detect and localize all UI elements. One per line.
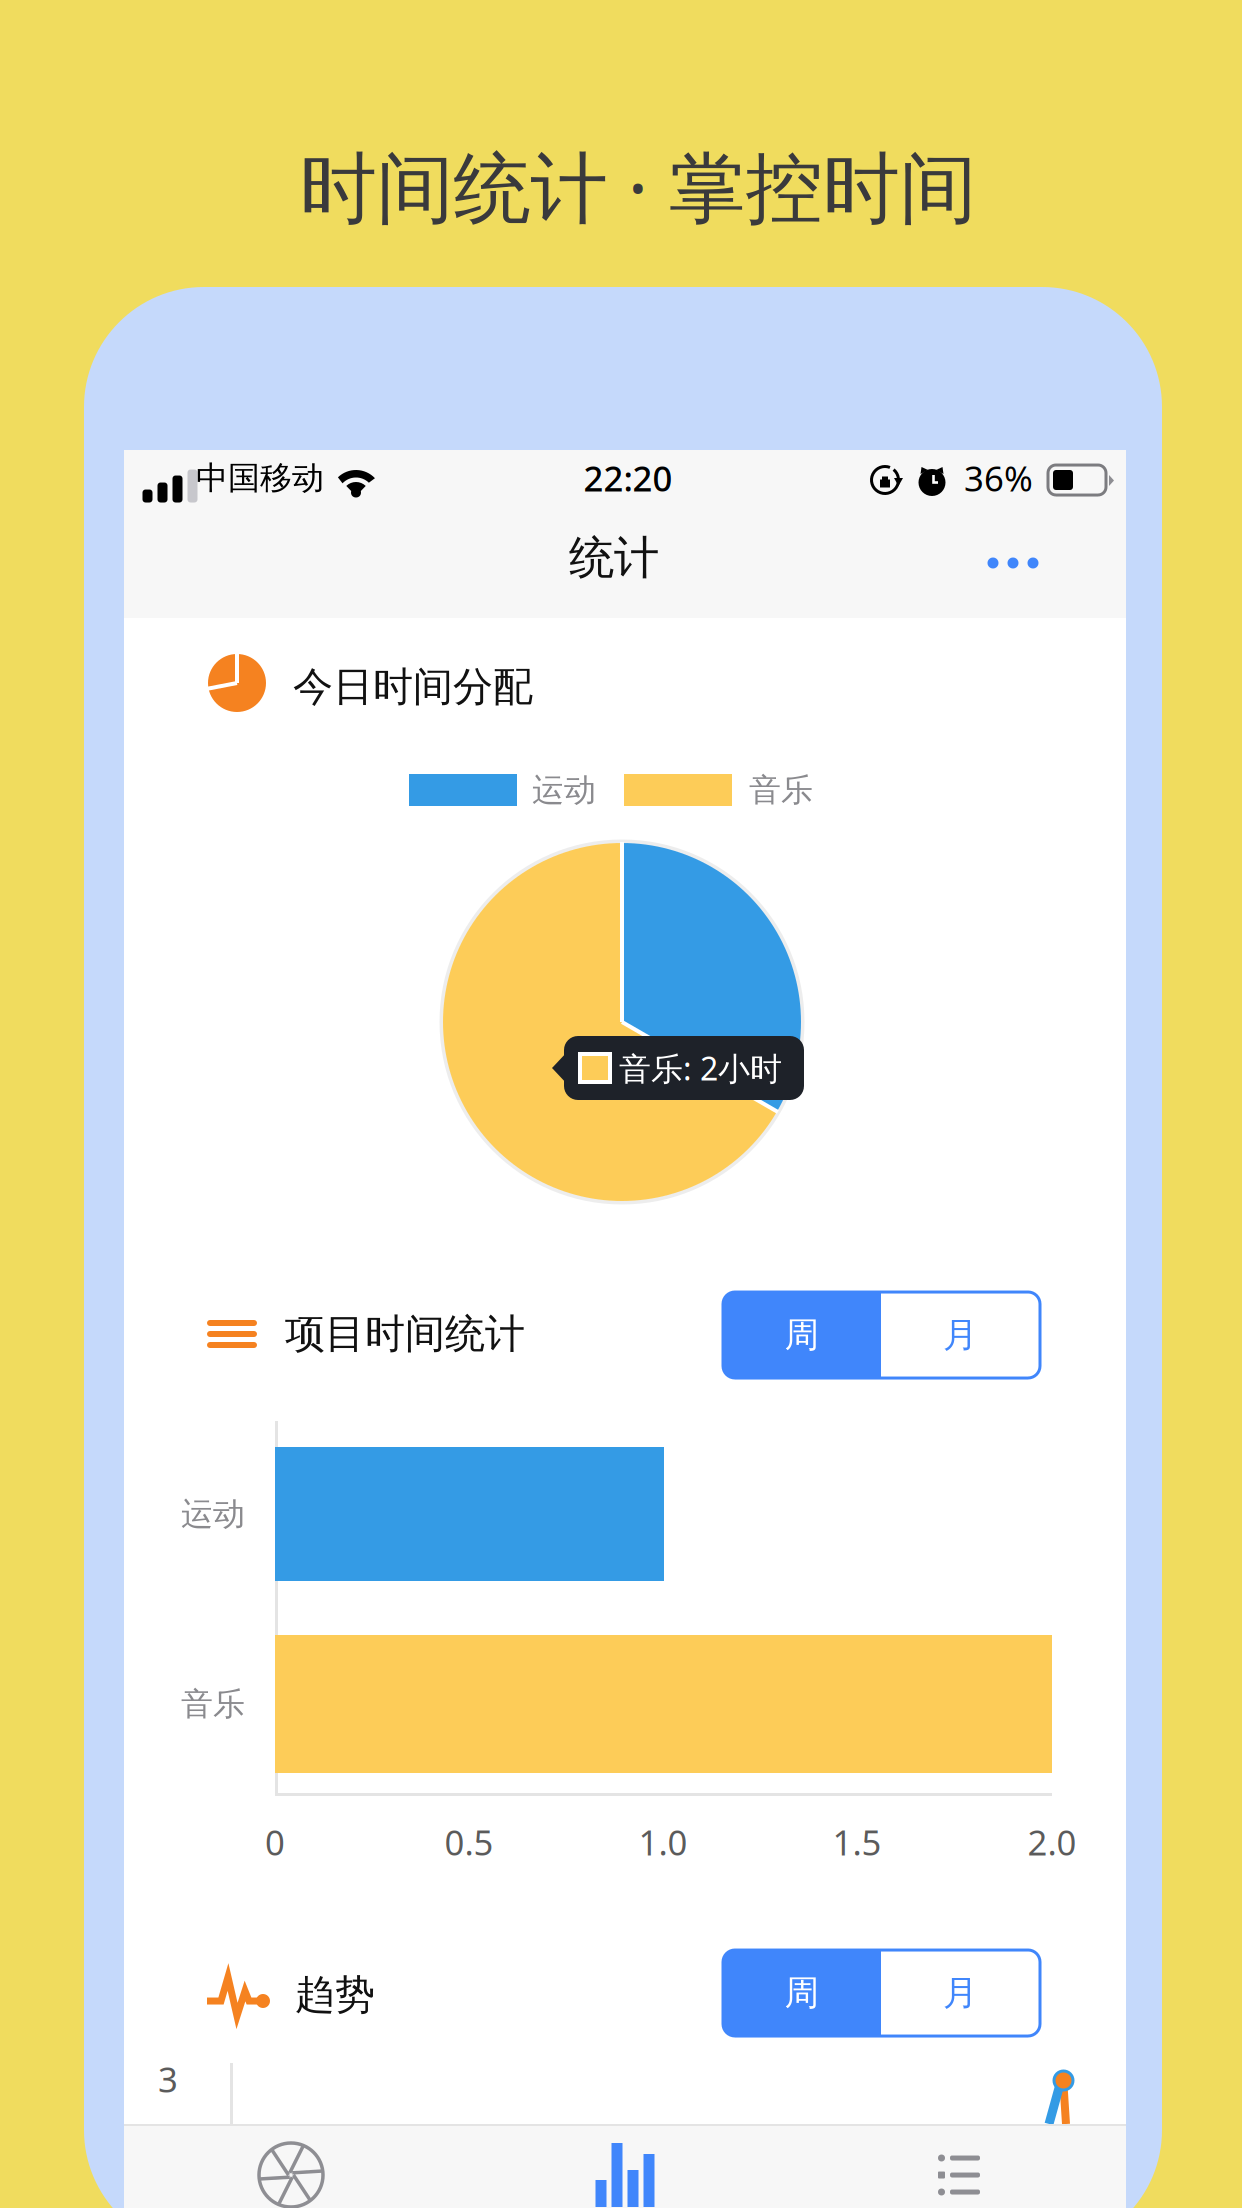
staticText: 月 — [943, 1314, 978, 1356]
button[interactable]: Overview — [124, 2133, 458, 2208]
button[interactable]: 月 — [881, 1292, 1040, 1378]
staticText: 音乐 — [181, 1684, 245, 1724]
staticText: 1.5 — [832, 1819, 881, 1865]
button[interactable]: 周 — [723, 1292, 881, 1378]
button[interactable]: 月 — [881, 1950, 1040, 2036]
staticText: 1.0 — [638, 1819, 687, 1865]
staticText: 音乐 — [749, 770, 813, 810]
staticText: 运动 — [532, 770, 596, 810]
button[interactable]: More options — [933, 522, 1093, 604]
staticText: 周 — [784, 1314, 819, 1356]
staticText: 运动 — [181, 1494, 245, 1534]
staticText: 0 — [265, 1819, 285, 1865]
staticText: 周 — [784, 1972, 819, 2014]
button[interactable]: 周 — [723, 1950, 881, 2036]
staticText: 0.5 — [444, 1819, 493, 1865]
staticText: 项目时间统计 — [285, 1309, 525, 1358]
staticText: 月 — [943, 1972, 978, 2014]
staticText: 今日时间分配 — [293, 662, 533, 711]
staticText: 时间统计 · 掌控时间 — [299, 135, 976, 237]
button[interactable]: Records — [792, 2133, 1126, 2208]
staticText: 统计 — [569, 530, 659, 586]
staticText: 音乐: 2小时 — [619, 1047, 782, 1089]
staticText: 2.0 — [1027, 1819, 1076, 1865]
button[interactable]: Statistics — [458, 2133, 792, 2208]
staticText: 3 — [158, 2056, 178, 2102]
staticText: 22:20 — [583, 455, 672, 501]
staticText: 36% — [964, 455, 1033, 501]
staticText: 中国移动 — [196, 458, 324, 498]
staticText: 趋势 — [295, 1970, 375, 2019]
